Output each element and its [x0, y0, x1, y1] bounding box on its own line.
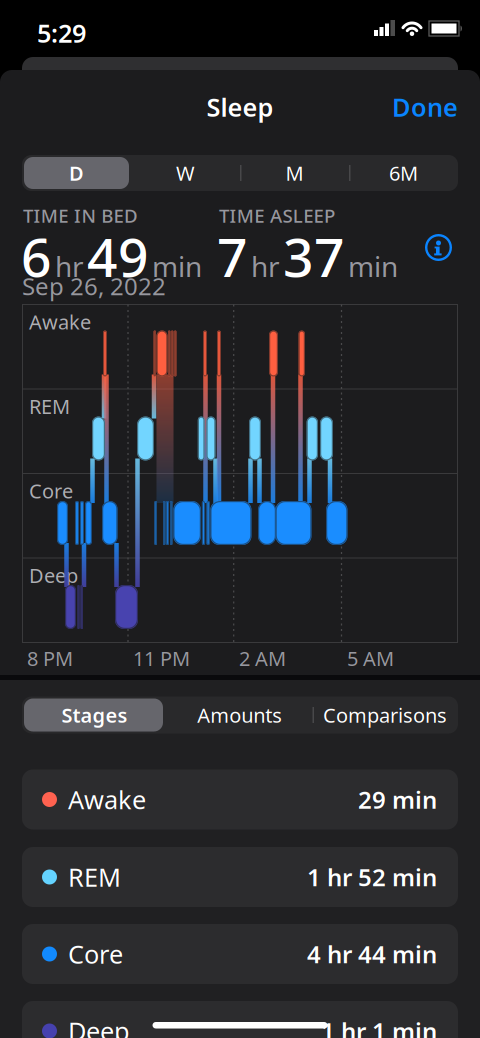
staticText: 5:29 — [37, 16, 86, 50]
staticText: 6 — [21, 221, 52, 292]
button[interactable]: W — [131, 155, 240, 191]
staticText: min — [348, 248, 398, 285]
button[interactable]: Deep — [22, 1001, 458, 1038]
staticText: 11 PM — [133, 645, 190, 672]
staticText: Deep — [68, 1014, 130, 1038]
button[interactable]: Info — [425, 234, 452, 261]
button[interactable]: Stages — [22, 696, 167, 733]
button[interactable]: 6M — [349, 155, 458, 191]
button[interactable]: Awake — [22, 769, 458, 829]
staticText: 2 AM — [239, 645, 286, 672]
staticText: Core — [68, 937, 123, 971]
staticText: Stages — [61, 702, 127, 728]
staticText: hr — [251, 248, 280, 285]
staticText: 1 hr 52 min — [307, 861, 437, 893]
staticText: Amounts — [197, 702, 282, 728]
staticText: REM — [68, 860, 121, 894]
staticText: 6M — [389, 160, 418, 186]
staticText: 29 min — [358, 784, 437, 815]
staticText: hr — [55, 248, 84, 285]
button[interactable]: D — [22, 155, 131, 191]
staticText: D — [69, 160, 84, 186]
staticText: 49 — [87, 221, 149, 292]
staticText: Core — [29, 477, 73, 504]
button[interactable]: Comparisons — [313, 696, 458, 733]
staticText: REM — [29, 393, 70, 420]
button[interactable]: Done — [392, 90, 458, 124]
staticText: 4 hr 44 min — [307, 938, 437, 970]
staticText: Deep — [29, 562, 78, 589]
staticText: 8 PM — [27, 645, 73, 672]
staticText: Sep 26, 2022 — [22, 270, 166, 302]
staticText: Sleep — [206, 90, 273, 124]
button[interactable]: Core — [22, 924, 458, 984]
staticText: Awake — [68, 783, 146, 816]
button[interactable]: Amounts — [167, 696, 312, 733]
staticText: M — [285, 160, 303, 186]
staticText: TIME ASLEEP — [219, 203, 335, 228]
staticText: 37 — [283, 221, 345, 292]
staticText: 1 hr 1 min — [321, 1015, 437, 1038]
staticText: 5 AM — [347, 645, 394, 672]
staticText: TIME IN BED — [23, 203, 138, 228]
staticText: 7 — [217, 221, 248, 292]
button[interactable]: M — [240, 155, 349, 191]
button[interactable]: REM — [22, 847, 458, 907]
staticText: min — [152, 248, 202, 285]
staticText: Done — [392, 90, 458, 124]
staticText: W — [176, 160, 195, 186]
staticText: Awake — [29, 308, 91, 335]
staticText: Comparisons — [323, 702, 447, 728]
